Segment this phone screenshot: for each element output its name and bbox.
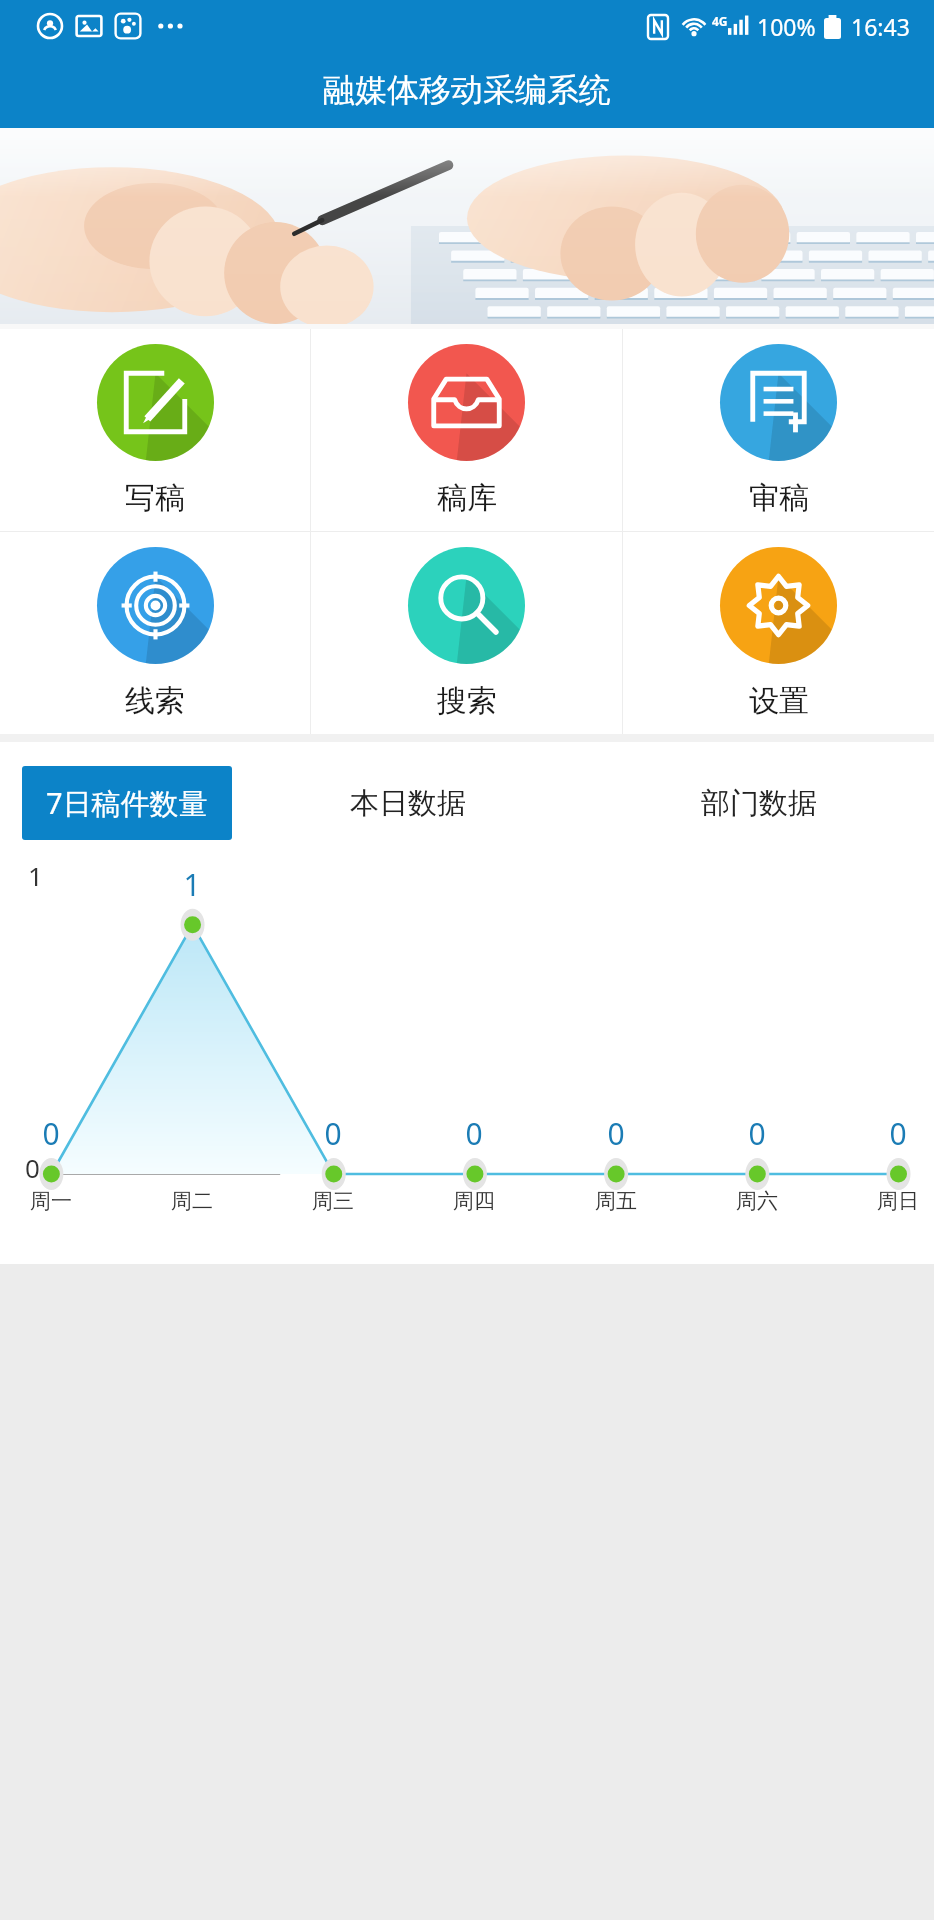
staticText: 0	[42, 1113, 60, 1154]
staticText: 周四	[453, 1188, 495, 1214]
button[interactable]: 本日数据	[232, 742, 583, 864]
staticText: 周三	[312, 1188, 354, 1214]
staticText: 周五	[595, 1188, 637, 1214]
staticText: 16:43	[851, 11, 910, 42]
button[interactable]: 7日稿件数量	[22, 766, 232, 840]
staticText: 本日数据	[350, 785, 466, 822]
button[interactable]: 稿库	[311, 329, 622, 531]
staticText: 4G	[712, 13, 728, 29]
staticText: 0	[25, 1150, 40, 1185]
staticText: 0	[748, 1113, 766, 1154]
staticText: 周二	[171, 1188, 213, 1214]
staticText: 审稿	[749, 479, 809, 517]
staticText: 周一	[30, 1188, 72, 1214]
staticText: 1	[28, 858, 43, 893]
button[interactable]: 线索	[0, 532, 310, 734]
staticText: 周日	[877, 1188, 919, 1214]
button[interactable]: 搜索	[311, 532, 622, 734]
staticText: 搜索	[437, 682, 497, 720]
staticText: 0	[889, 1113, 907, 1154]
staticText: 线索	[125, 682, 185, 720]
staticText: 0	[465, 1113, 483, 1154]
staticText: 7日稿件数量	[46, 783, 208, 823]
staticText: 0	[607, 1113, 625, 1154]
staticText: 部门数据	[701, 785, 817, 822]
staticText: 100%	[757, 11, 816, 42]
staticText: 周六	[736, 1188, 778, 1214]
staticText: 写稿	[125, 479, 185, 517]
staticText: 0	[324, 1113, 342, 1154]
button[interactable]: 部门数据	[583, 742, 934, 864]
staticText: 1	[183, 864, 201, 905]
button[interactable]: 写稿	[0, 329, 310, 531]
button[interactable]: 审稿	[623, 329, 934, 531]
staticText: 融媒体移动采编系统	[323, 70, 611, 110]
button[interactable]: 设置	[623, 532, 934, 734]
staticText: 稿库	[437, 479, 497, 517]
staticText: 设置	[749, 682, 809, 720]
